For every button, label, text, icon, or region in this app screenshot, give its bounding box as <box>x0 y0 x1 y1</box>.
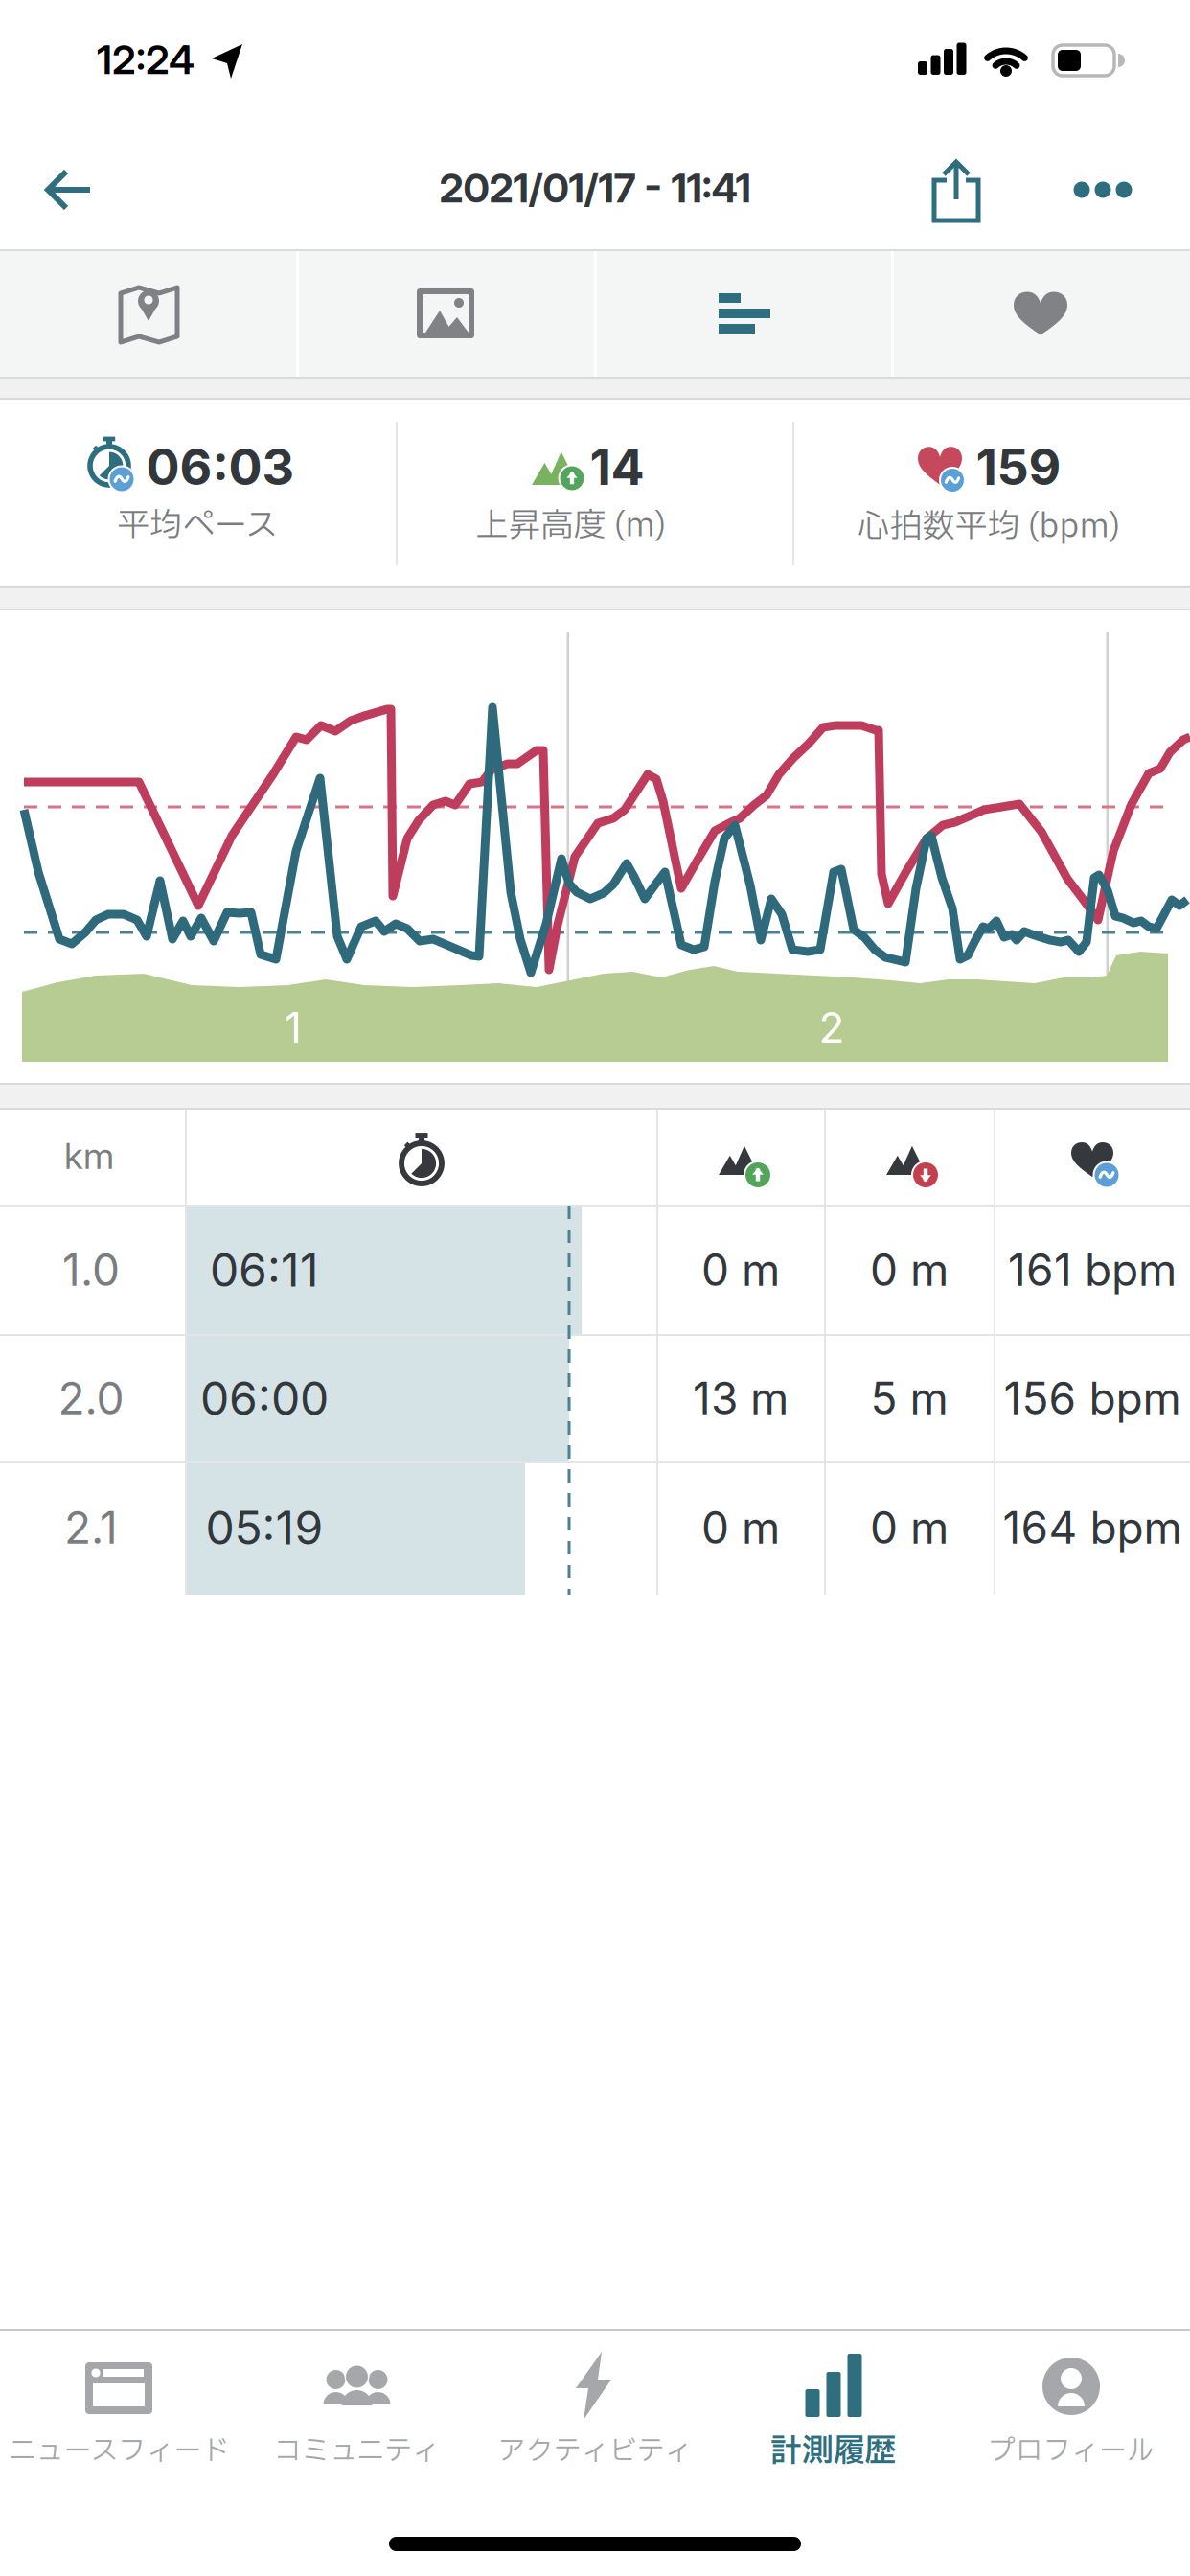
staticText: アクティビティ <box>498 2431 692 2472</box>
staticText: 13 m <box>693 1372 789 1425</box>
staticText: 2 <box>819 1002 845 1053</box>
staticText: 06:11 <box>210 1242 319 1298</box>
staticText: コミュニティ <box>274 2431 440 2472</box>
staticText: 164 bpm <box>1003 1501 1182 1554</box>
staticText: 159 <box>976 437 1061 497</box>
staticText: km <box>64 1134 114 1178</box>
button[interactable]: コミュニティ <box>238 2331 476 2494</box>
staticText: 2.0 <box>58 1372 124 1425</box>
staticText: 心拍数平均 (bpm) <box>857 503 1121 552</box>
button[interactable]: Map <box>1 250 296 378</box>
staticText: 平均ペース <box>117 502 278 551</box>
staticText: 06:03 <box>146 437 295 497</box>
staticText: 156 bpm <box>1004 1372 1181 1425</box>
staticText: 1.0 <box>62 1243 120 1297</box>
staticText: 0 m <box>870 1501 949 1554</box>
staticText: 0 m <box>870 1243 949 1297</box>
button[interactable]: Share <box>908 152 1004 229</box>
button[interactable]: 計測履歴 <box>714 2331 952 2494</box>
button[interactable]: Back <box>16 137 122 242</box>
button[interactable]: Photos <box>298 250 593 378</box>
button[interactable]: ニュースフィード <box>0 2331 238 2494</box>
staticText: 2.1 <box>64 1501 118 1554</box>
staticText: 0 m <box>701 1501 780 1554</box>
staticText: 12:24 <box>97 35 195 84</box>
staticText: 5 m <box>870 1372 948 1425</box>
staticText: 2021/01/17 - 11:41 <box>439 163 751 212</box>
button[interactable]: More <box>1060 151 1146 228</box>
button[interactable]: Like <box>893 250 1188 378</box>
staticText: 06:00 <box>200 1370 329 1426</box>
staticText: プロフィール <box>988 2431 1155 2472</box>
staticText: 計測履歴 <box>770 2428 896 2475</box>
staticText: 1 <box>285 1002 302 1053</box>
button[interactable]: プロフィール <box>952 2331 1190 2494</box>
staticText: 14 <box>590 437 644 497</box>
staticText: 05:19 <box>206 1500 323 1555</box>
staticText: 0 m <box>701 1243 780 1297</box>
staticText: ニュースフィード <box>8 2431 229 2472</box>
button[interactable]: アクティビティ <box>476 2331 714 2494</box>
staticText: 上昇高度 (m) <box>476 502 666 551</box>
staticText: 161 bpm <box>1008 1243 1177 1297</box>
button[interactable]: Statistics <box>596 250 891 378</box>
